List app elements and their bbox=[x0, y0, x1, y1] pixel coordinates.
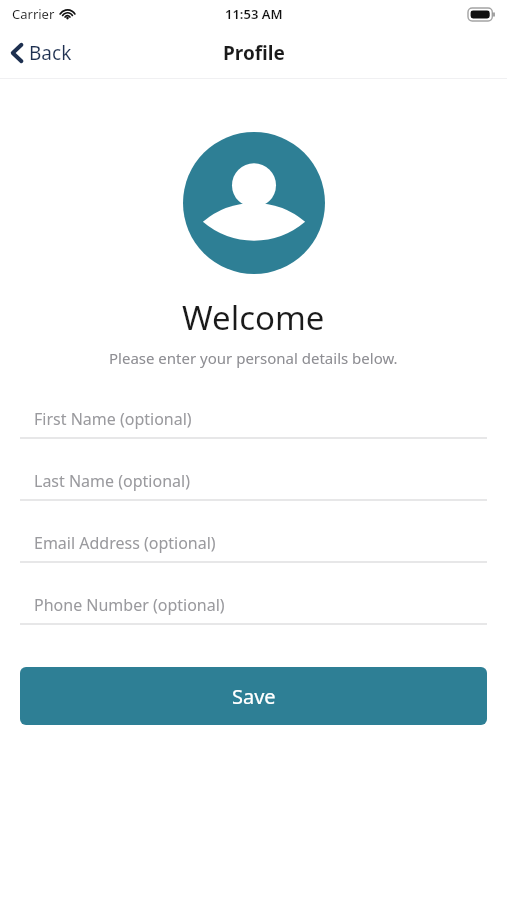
staticText: Welcome bbox=[182, 295, 325, 340]
button[interactable]: First Name (optional) bbox=[0, 400, 507, 439]
button[interactable]: Save bbox=[20, 667, 487, 725]
button[interactable]: Last Name (optional) bbox=[0, 462, 507, 501]
staticText: Phone Number (optional) bbox=[34, 594, 225, 616]
staticText: Email Address (optional) bbox=[34, 532, 216, 554]
staticText: 11:53 AM bbox=[225, 5, 283, 23]
other: Profile photo bbox=[183, 132, 325, 274]
staticText: Back bbox=[29, 40, 72, 66]
staticText: Profile bbox=[223, 40, 285, 66]
button[interactable]: Phone Number (optional) bbox=[0, 586, 507, 625]
staticText: First Name (optional) bbox=[34, 408, 192, 430]
button[interactable]: Email Address (optional) bbox=[0, 524, 507, 563]
staticText: Last Name (optional) bbox=[34, 470, 190, 492]
staticText: Carrier bbox=[12, 5, 55, 23]
button[interactable]: Back bbox=[0, 31, 84, 75]
staticText: Save bbox=[232, 683, 276, 710]
staticText: Please enter your personal details below… bbox=[109, 348, 398, 368]
